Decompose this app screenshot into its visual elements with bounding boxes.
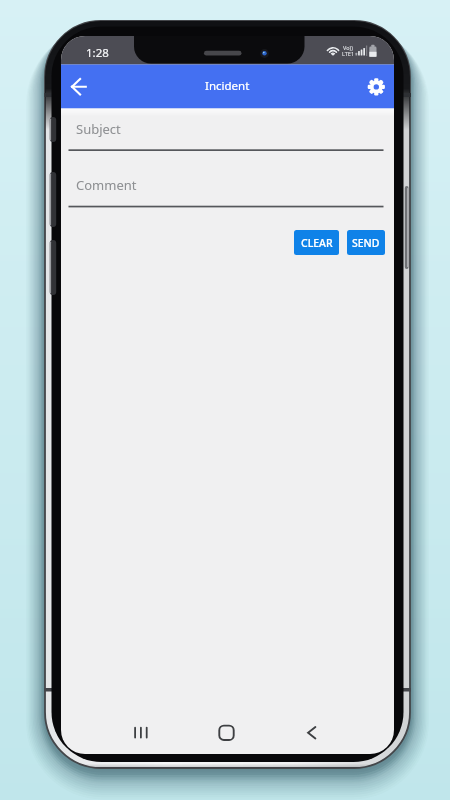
button[interactable] [359,69,393,103]
button[interactable] [291,714,331,750]
button[interactable]: Subject [68,109,384,151]
staticText: Subject [76,120,121,138]
staticText: Incident [205,78,250,94]
button[interactable]: Comment [68,165,384,207]
staticText: Vo)) [343,44,353,51]
button[interactable] [120,714,160,750]
button[interactable] [206,714,246,750]
staticText: SEND [352,236,380,250]
staticText: CLEAR [301,236,333,250]
button[interactable]: SEND [347,230,385,255]
staticText: LTE1 [342,50,355,57]
button[interactable]: CLEAR [294,230,339,255]
button[interactable] [63,69,97,103]
staticText: Comment [76,176,137,194]
staticText: 1:28 [86,45,109,61]
